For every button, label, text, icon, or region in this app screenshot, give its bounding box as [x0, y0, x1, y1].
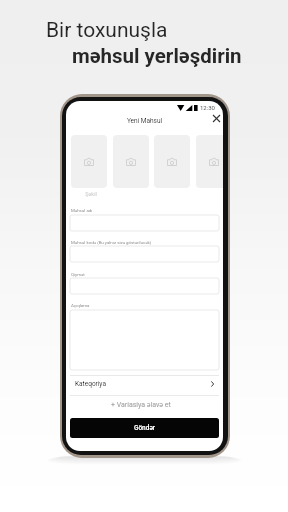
button[interactable]: Add photo	[154, 135, 190, 188]
staticText: məhsul yerləşdirin	[72, 44, 242, 68]
staticText: Şəkil	[85, 191, 97, 197]
button[interactable]: Add photo	[113, 135, 149, 188]
button[interactable]: Göndər	[70, 418, 219, 438]
button[interactable]	[70, 278, 219, 294]
staticText: 12:30	[200, 104, 215, 111]
staticText: Qiymət	[71, 272, 85, 277]
staticText: Məhsul adı	[71, 208, 93, 213]
staticText: Açıqlama	[71, 303, 90, 308]
staticText: Göndər	[134, 424, 156, 432]
staticText: Yeni Mahsul	[66, 117, 223, 125]
button[interactable]: Add photo	[196, 135, 223, 188]
staticText: + Variasiya əlavə et	[111, 401, 171, 409]
staticText: Kateqoriya	[75, 380, 106, 388]
staticText: Bir toxunuşla	[46, 18, 168, 43]
button[interactable]	[70, 215, 219, 231]
button[interactable]	[70, 246, 219, 262]
button[interactable]: Add photo	[71, 135, 107, 188]
button[interactable]: Close	[209, 111, 223, 125]
button[interactable]: + Variasiya əlavə et	[70, 398, 219, 411]
button[interactable]: Kateqoriya	[70, 375, 219, 396]
staticText: Məhsul kodu (Bu yalnız sizə göstəriləcək…	[71, 240, 152, 245]
